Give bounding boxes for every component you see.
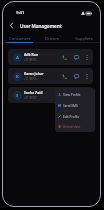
button[interactable]: Suppliers xyxy=(68,32,100,43)
staticText: Edit Profile xyxy=(63,115,80,119)
staticText: Karan Johar xyxy=(24,71,44,76)
button[interactable]: Send SMS xyxy=(55,100,95,111)
staticText: Send SMS xyxy=(63,104,78,108)
button[interactable]: K xyxy=(8,68,93,84)
button[interactable]: A xyxy=(8,49,93,65)
staticText: Drivers xyxy=(45,36,59,41)
button[interactable]: S xyxy=(8,87,93,103)
button[interactable]: Delete User xyxy=(55,122,95,131)
staticText: Adit Rao xyxy=(24,52,38,57)
button[interactable]: Back xyxy=(7,21,16,30)
staticText: Consumers xyxy=(9,36,31,41)
button[interactable]: Drivers xyxy=(36,32,68,43)
button[interactable]: Message xyxy=(72,91,81,100)
button[interactable]: More options xyxy=(83,72,91,80)
staticText: Sneha Patil xyxy=(24,90,43,95)
staticText: User Management xyxy=(20,23,62,29)
staticText: View Profile xyxy=(63,93,81,97)
button[interactable]: Call xyxy=(60,72,69,81)
button[interactable]: Call xyxy=(60,91,69,100)
button[interactable]: Consumers xyxy=(3,32,36,43)
staticText: +91 98767 xyxy=(24,96,37,100)
button[interactable]: Edit Profile xyxy=(55,111,95,122)
button[interactable]: Message xyxy=(72,72,81,81)
staticText: +91 98765 xyxy=(24,58,37,62)
staticText: Delete User xyxy=(63,125,81,129)
button[interactable]: Message xyxy=(72,53,81,62)
staticText: K xyxy=(16,74,19,80)
staticText: A xyxy=(16,55,19,61)
staticText: Suppliers xyxy=(75,36,93,41)
button[interactable]: View Profile xyxy=(55,89,95,100)
staticText: 9:41 xyxy=(16,10,25,16)
button[interactable]: Call xyxy=(60,53,69,62)
staticText: S xyxy=(16,93,19,99)
staticText: +91 98766 xyxy=(24,77,37,81)
button[interactable]: More options xyxy=(83,53,91,61)
